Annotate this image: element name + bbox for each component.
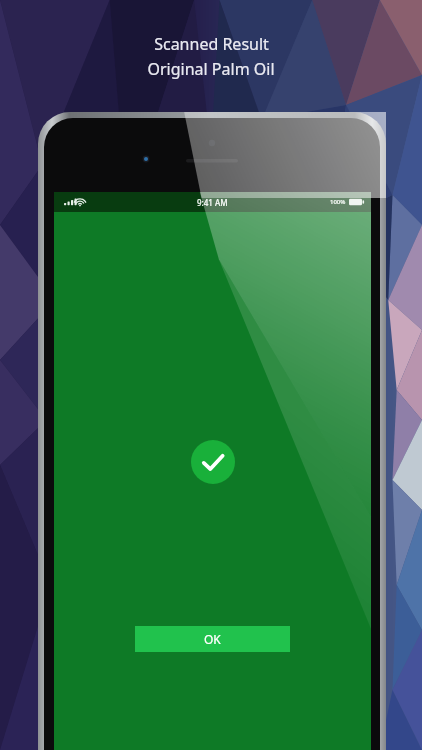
- staticText: Original Palm Oil: [147, 58, 275, 80]
- button[interactable]: OK: [135, 626, 290, 652]
- staticText: Scanned Result: [154, 33, 269, 55]
- staticText: OK: [204, 631, 221, 647]
- staticText: 9:41 AM: [197, 197, 228, 208]
- button[interactable]: Scan successful: [191, 440, 235, 484]
- staticText: 100%: [330, 198, 346, 206]
